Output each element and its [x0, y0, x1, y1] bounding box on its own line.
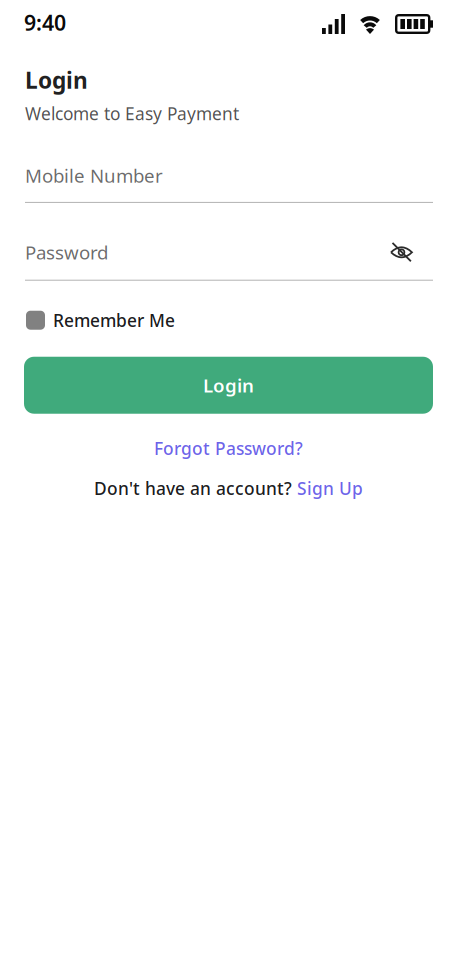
button[interactable]: Login — [24, 357, 433, 414]
staticText: 9:40 — [24, 8, 66, 37]
staticText: Welcome to Easy Payment — [25, 102, 239, 125]
staticText: Sign Up — [297, 477, 363, 500]
button[interactable]: Sign Up — [297, 477, 363, 500]
staticText: Mobile Number — [25, 163, 163, 188]
button[interactable]: Show password — [390, 242, 413, 262]
button[interactable]: Mobile Number — [0, 163, 457, 203]
staticText: Forgot Password? — [154, 437, 303, 460]
button[interactable]: Remember Me — [0, 309, 175, 332]
staticText: Password — [25, 240, 108, 265]
staticText: Don't have an account? — [94, 477, 292, 500]
staticText: Login — [25, 65, 88, 95]
button[interactable]: Password — [0, 240, 457, 281]
button[interactable]: Forgot Password? — [154, 437, 303, 460]
staticText: Login — [203, 373, 254, 398]
staticText: Remember Me — [53, 309, 175, 332]
